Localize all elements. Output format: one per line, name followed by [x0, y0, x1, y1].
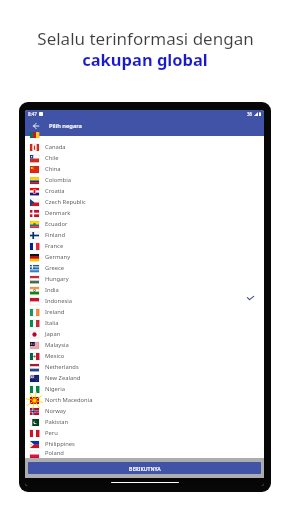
button[interactable]: Malaysia [25, 340, 264, 351]
button[interactable]: Japan [25, 329, 264, 340]
button[interactable]: Chile [25, 153, 264, 164]
button[interactable]: Peru [25, 428, 264, 439]
staticText: China [45, 165, 61, 173]
staticText: France [45, 242, 64, 250]
staticText: Colombia [45, 176, 71, 184]
button[interactable]: BERIKUTNYA [28, 462, 261, 474]
staticText: Indonesia [45, 297, 72, 305]
staticText: 8:47 [28, 111, 37, 117]
button[interactable]: France [25, 241, 264, 252]
button[interactable]: Ecuador [25, 219, 264, 230]
staticText: Selalu terinformasi dengan [37, 27, 254, 50]
button[interactable]: Italia [25, 318, 264, 329]
staticText: Czech Republic [45, 198, 86, 206]
staticText: Hungary [45, 275, 69, 283]
staticText: cakupan global [82, 48, 208, 70]
staticText: Peru [45, 429, 58, 437]
button[interactable]: Finland [25, 230, 264, 241]
staticText: Greece [45, 264, 65, 272]
button[interactable]: Mexico [25, 351, 264, 362]
staticText: Italia [45, 319, 59, 327]
staticText: Canada [45, 143, 66, 151]
button[interactable]: China [25, 164, 264, 175]
staticText: Poland [45, 449, 64, 457]
staticText: Croatia [45, 187, 65, 195]
button[interactable]: Poland [25, 450, 264, 458]
staticText: BERIKUTNYA [129, 465, 161, 472]
button[interactable]: Ireland [25, 307, 264, 318]
button[interactable]: Pakistan [25, 417, 264, 428]
staticText: Mexico [45, 352, 65, 360]
staticText: 36 [247, 111, 253, 117]
button[interactable]: Czech Republic [25, 197, 264, 208]
staticText: New Zealand [45, 374, 81, 382]
staticText: Norway [45, 407, 67, 415]
button[interactable]: Greece [25, 263, 264, 274]
button[interactable]: Germany [25, 252, 264, 263]
staticText: Chile [45, 154, 59, 162]
staticText: Japan [45, 330, 61, 338]
staticText: Netherlands [45, 363, 79, 371]
button[interactable]: Denmark [25, 208, 264, 219]
button[interactable]: Netherlands [25, 362, 264, 373]
button[interactable]: North Macedonia [25, 395, 264, 406]
staticText: India [45, 286, 59, 294]
button[interactable]: Hungary [25, 274, 264, 285]
staticText: Denmark [45, 209, 71, 217]
staticText: Ireland [45, 308, 65, 316]
button[interactable]: New Zealand [25, 373, 264, 384]
staticText: Philippines [45, 440, 75, 448]
staticText: Ecuador [45, 220, 68, 228]
button[interactable]: Croatia [25, 186, 264, 197]
button[interactable]: Nigeria [25, 384, 264, 395]
staticText: North Macedonia [45, 396, 93, 404]
staticText: Pakistan [45, 418, 69, 426]
staticText: Germany [45, 253, 71, 261]
button[interactable]: India [25, 285, 264, 296]
staticText: Malaysia [45, 341, 69, 349]
button[interactable]: Colombia [25, 175, 264, 186]
button[interactable]: Canada [25, 142, 264, 153]
button[interactable]: Norway [25, 406, 264, 417]
staticText: Pilih negara [49, 122, 82, 130]
staticText: Finland [45, 231, 65, 239]
button[interactable]: Indonesia [25, 296, 264, 307]
button[interactable]: Philippines [25, 439, 264, 450]
staticText: Nigeria [45, 385, 65, 393]
button[interactable]: Back [28, 118, 44, 134]
